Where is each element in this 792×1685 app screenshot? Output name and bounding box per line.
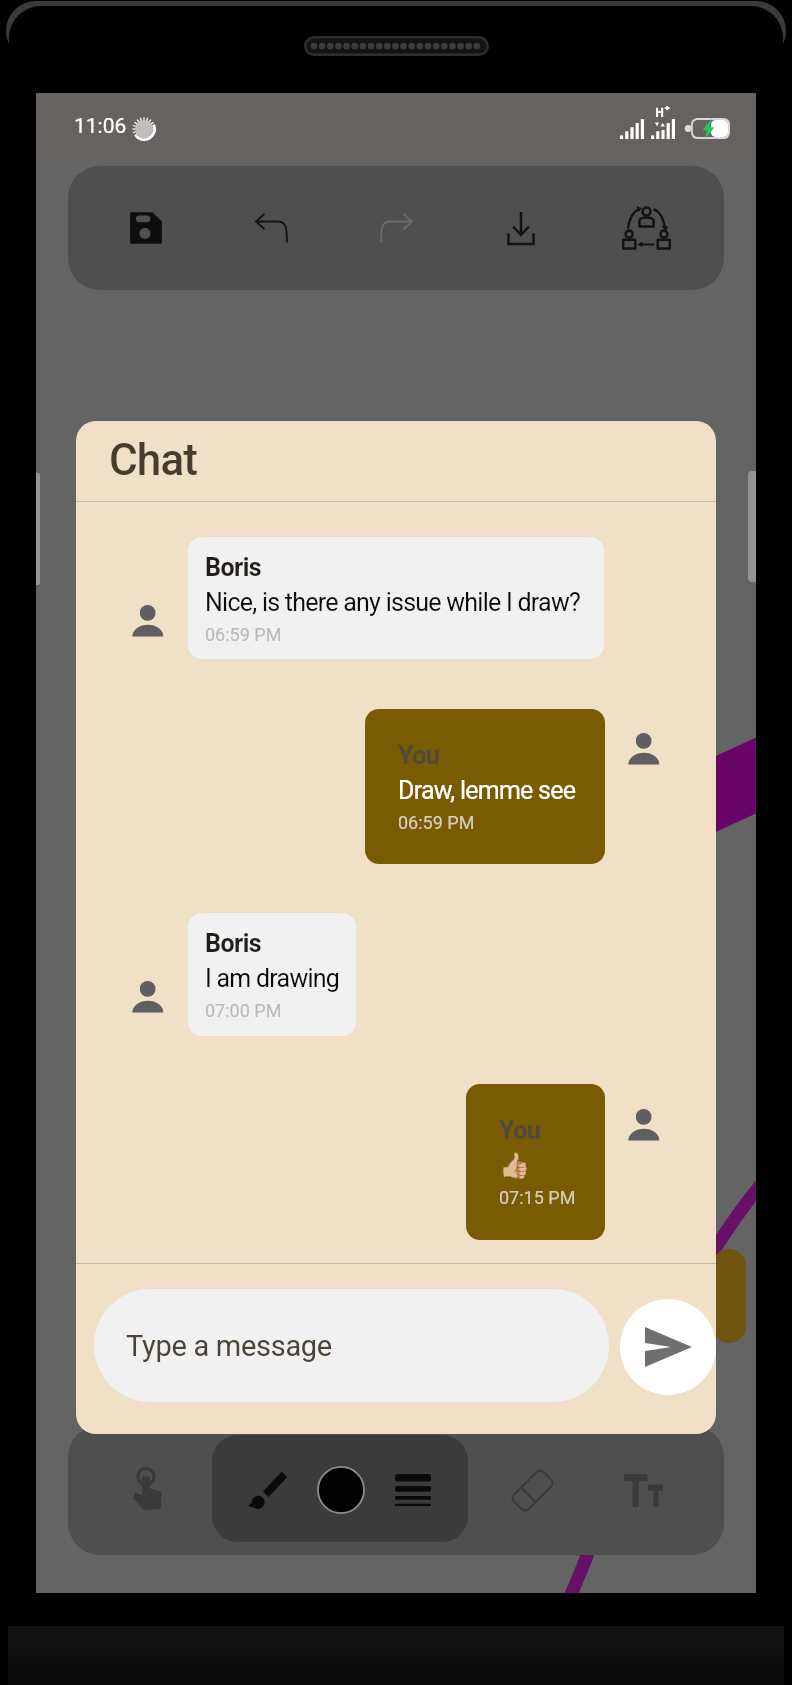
staticText: 07:15 PM [499, 1187, 576, 1208]
staticText: Chat [109, 434, 198, 486]
staticText: You [398, 741, 440, 770]
button[interactable]: Brush [223, 1425, 311, 1555]
staticText: 👍🏼 [499, 1151, 530, 1180]
button[interactable]: Boris [188, 537, 604, 659]
button[interactable]: Send [620, 1299, 716, 1395]
staticText: Boris [205, 553, 262, 582]
button[interactable]: Share [602, 166, 690, 290]
staticText: Nice, is there any issue while I draw? [205, 588, 580, 617]
staticText: Type a message [126, 1329, 332, 1363]
button[interactable]: Type a message [94, 1289, 609, 1402]
staticText: 06:59 PM [205, 624, 282, 645]
staticText: 06:59 PM [398, 812, 475, 833]
button[interactable]: Boris [188, 913, 356, 1036]
button[interactable]: Save [102, 166, 190, 290]
staticText: 11:06 [74, 114, 127, 139]
button[interactable]: Text [599, 1425, 687, 1555]
button[interactable]: Eraser [488, 1425, 576, 1555]
staticText: You [499, 1116, 541, 1145]
button[interactable]: Touch [104, 1425, 192, 1555]
staticText: Draw, lemme see [398, 776, 576, 805]
button[interactable]: You [365, 709, 605, 864]
button[interactable]: Colour [297, 1425, 385, 1555]
button[interactable]: Undo [227, 166, 315, 290]
button[interactable]: Stroke width [369, 1425, 457, 1555]
button[interactable]: You [466, 1084, 605, 1240]
staticText: I am drawing [205, 964, 340, 993]
staticText: 07:00 PM [205, 1000, 282, 1021]
staticText: Boris [205, 929, 262, 958]
button[interactable]: Download [477, 166, 565, 290]
